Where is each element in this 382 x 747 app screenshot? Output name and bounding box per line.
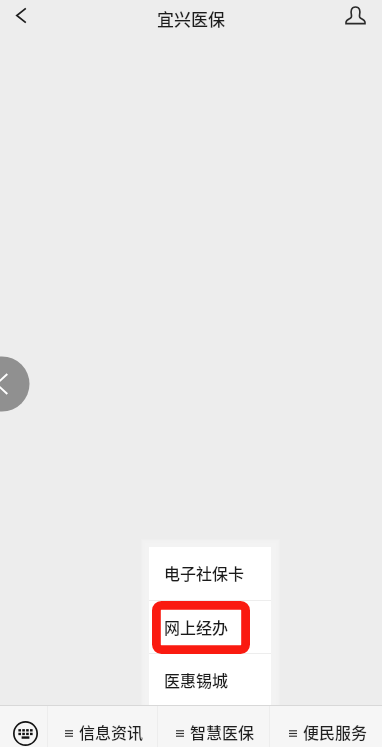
staticText: 智慧医保 [190, 720, 255, 743]
staticText: 医惠锡城 [164, 668, 229, 691]
button[interactable]: Profile [342, 2, 368, 28]
button[interactable]: Keyboard [0, 706, 47, 747]
button[interactable]: 智慧医保 [158, 706, 269, 747]
button[interactable]: 医惠锡城 [149, 654, 271, 706]
button[interactable]: Back [0, 356, 30, 412]
button[interactable]: 网上经办 [149, 601, 271, 653]
staticText: 信息资讯 [79, 720, 144, 743]
button[interactable]: 便民服务 [270, 706, 382, 747]
staticText: 网上经办 [164, 615, 229, 638]
staticText: 宜兴医保 [157, 6, 225, 31]
staticText: 便民服务 [303, 720, 368, 743]
button[interactable]: 信息资讯 [48, 706, 157, 747]
button[interactable]: Back [6, 0, 36, 30]
button[interactable]: 电子社保卡 [149, 547, 271, 600]
staticText: 电子社保卡 [164, 561, 245, 584]
